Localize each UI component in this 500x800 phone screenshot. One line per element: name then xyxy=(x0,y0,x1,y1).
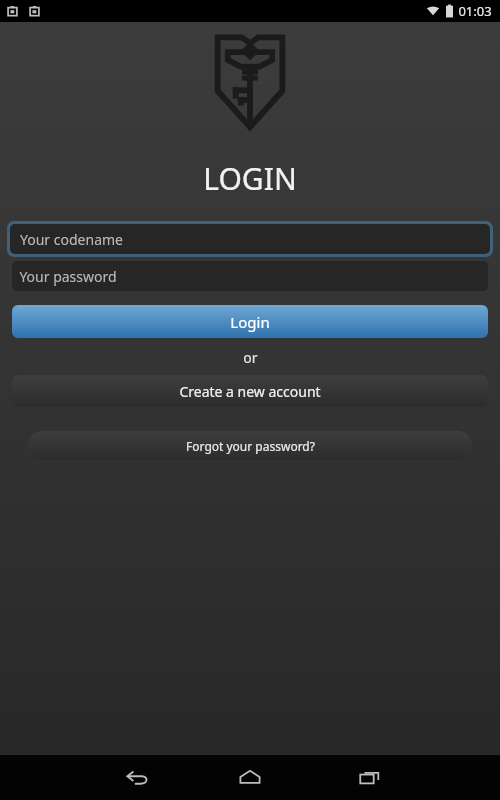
staticText: Your password xyxy=(19,267,117,286)
button[interactable]: Home xyxy=(226,755,274,800)
staticText: 01:03 xyxy=(458,2,492,20)
staticText: Create a new account xyxy=(179,382,321,401)
staticText: LOGIN xyxy=(203,158,297,199)
button[interactable]: Back xyxy=(113,755,161,800)
button[interactable]: Recent apps xyxy=(345,755,393,800)
staticText: Forgot your password? xyxy=(186,438,315,454)
button[interactable]: Login xyxy=(12,305,488,338)
button[interactable]: Forgot your password? xyxy=(28,431,472,460)
staticText: or xyxy=(243,348,258,367)
button[interactable]: Your password xyxy=(12,261,488,291)
staticText: Your codename xyxy=(20,230,123,249)
other: App logo xyxy=(211,32,289,130)
staticText: Login xyxy=(230,312,270,332)
button[interactable]: Your codename xyxy=(10,224,490,254)
button[interactable]: Create a new account xyxy=(12,375,488,407)
